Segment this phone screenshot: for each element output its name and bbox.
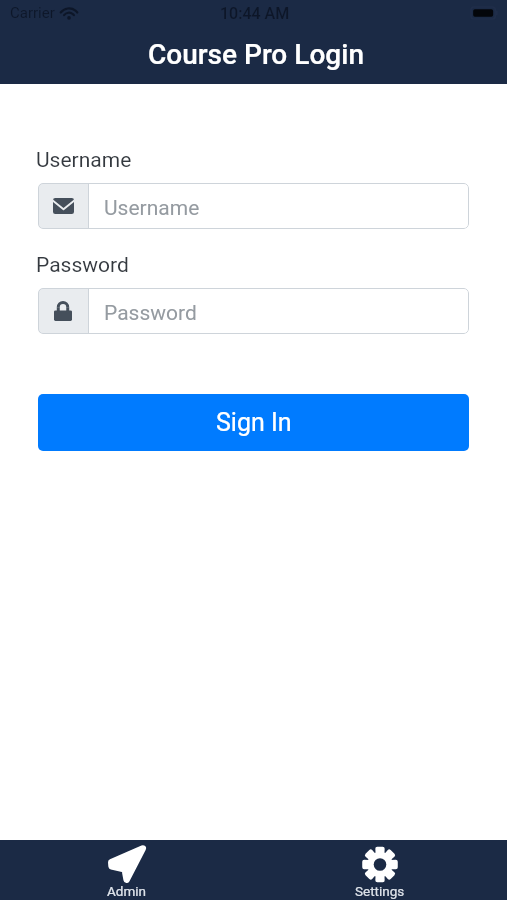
staticText: Password [104,301,197,326]
staticText: Admin [107,883,146,899]
staticText: Sign In [216,408,292,437]
button[interactable]: Password [38,288,469,334]
staticText: Username [104,196,200,221]
staticText: Carrier [10,4,55,22]
staticText: 10:44 AM [220,4,290,23]
staticText: Settings [355,883,405,899]
button[interactable]: Settings [253,840,507,900]
button[interactable]: Username [38,183,469,229]
staticText: Username [36,148,132,173]
button[interactable]: Sign In [38,394,469,451]
staticText: Course Pro Login [148,38,364,71]
staticText: Password [36,253,129,278]
button[interactable]: Admin [0,840,253,900]
